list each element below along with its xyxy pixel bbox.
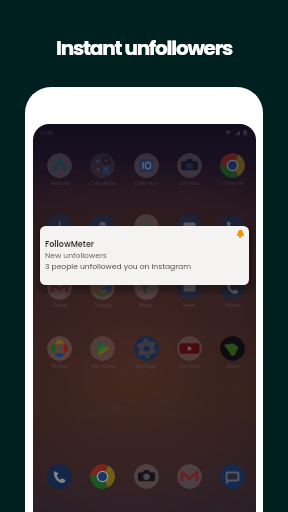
button[interactable]: Chrome <box>220 153 245 178</box>
staticText: Photos <box>38 363 82 370</box>
button[interactable]: FollowMeter <box>40 226 249 285</box>
button[interactable]: Play Store <box>90 336 115 361</box>
staticText: Settings <box>124 363 168 370</box>
staticText: Clock <box>38 241 82 248</box>
button[interactable]: YouTube <box>177 336 202 361</box>
button[interactable]: Calculator <box>90 153 115 178</box>
button[interactable]: Clock <box>47 214 72 239</box>
staticText: Android <box>38 180 82 187</box>
button[interactable]: Maps <box>134 275 159 300</box>
button[interactable]: Android <box>47 153 72 178</box>
button[interactable]: Maps <box>220 336 245 361</box>
staticText: 3 people unfollowed you on instagram <box>45 261 191 272</box>
staticText: FollowMeter <box>45 239 95 250</box>
staticText: 11:45 <box>40 129 54 137</box>
button[interactable]: Google <box>90 275 115 300</box>
staticText: Gmail <box>38 302 82 309</box>
button[interactable]: Settings <box>134 336 159 361</box>
staticText: Google <box>81 302 125 309</box>
button[interactable]: Photos <box>47 336 72 361</box>
button[interactable]: Chrome <box>90 464 115 489</box>
staticText: Maps <box>124 302 168 309</box>
button[interactable]: Contacts <box>90 214 115 239</box>
staticText: Meet <box>167 302 211 309</box>
staticText: Play Store <box>81 363 125 370</box>
button[interactable]: Camera <box>134 464 159 489</box>
button[interactable]: Meet <box>177 275 202 300</box>
staticText: Calendar <box>124 180 168 187</box>
button[interactable]: Gmail <box>177 464 202 489</box>
button[interactable]: Phone <box>220 275 245 300</box>
staticText: Chrome <box>211 180 255 187</box>
button[interactable]: Duo <box>177 214 202 239</box>
button[interactable]: Camera <box>177 153 202 178</box>
button[interactable]: Calendar <box>134 153 159 178</box>
staticText: Calculator <box>81 180 125 187</box>
staticText: Instant unfollowers <box>0 34 288 62</box>
staticText: Phone <box>211 302 255 309</box>
staticText: YouTube <box>167 363 211 370</box>
staticText: Contacts <box>81 241 125 248</box>
button[interactable]: Messages <box>220 464 245 489</box>
staticText: New unfollowers <box>45 250 107 261</box>
button[interactable]: Gmail <box>47 275 72 300</box>
button[interactable]: Phone <box>47 464 72 489</box>
staticText: Files <box>211 241 255 248</box>
button[interactable]: Drive <box>134 214 159 239</box>
button[interactable]: Files <box>220 214 245 239</box>
staticText: Camera <box>167 180 211 187</box>
staticText: Maps <box>211 363 255 370</box>
